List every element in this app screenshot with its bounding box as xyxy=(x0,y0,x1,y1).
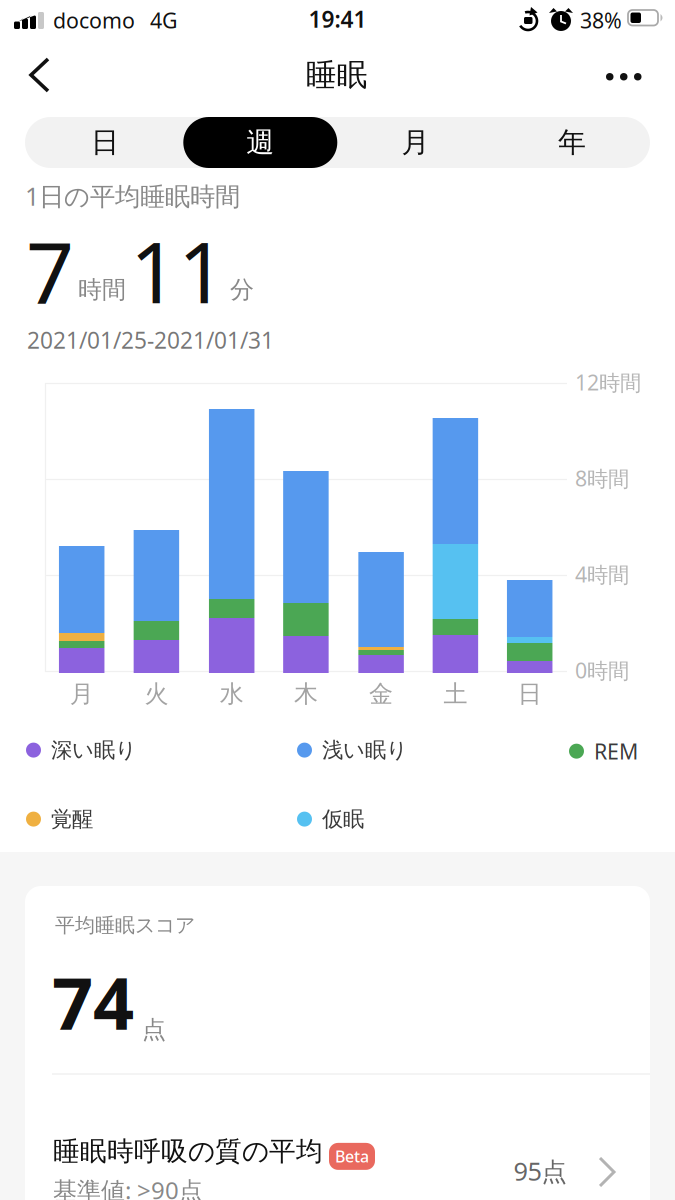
staticText: 1日の平均睡眠時間 xyxy=(25,179,240,213)
staticText: 土 xyxy=(443,679,467,709)
staticText: 月 xyxy=(402,125,430,160)
staticText: 金 xyxy=(369,679,393,709)
staticText: 0時間 xyxy=(575,656,629,684)
staticText: 19:41 xyxy=(308,4,366,34)
staticText: 時間 xyxy=(78,275,126,305)
staticText: REM xyxy=(594,737,638,765)
staticText: 火 xyxy=(144,679,168,709)
button[interactable]: 週 xyxy=(183,117,337,168)
staticText: 浅い眠り xyxy=(322,737,408,763)
staticText: 水 xyxy=(220,679,244,709)
staticText: 2021/01/25-2021/01/31 xyxy=(27,325,274,355)
staticText: 睡眠 xyxy=(306,56,368,94)
staticText: 睡眠時呼吸の質の平均 xyxy=(53,1135,323,1168)
button[interactable]: 年 xyxy=(495,117,649,168)
staticText: 7 xyxy=(26,215,74,326)
staticText: 4時間 xyxy=(575,560,629,588)
staticText: 8時間 xyxy=(575,464,629,492)
button[interactable]: Back xyxy=(18,53,62,97)
staticText: 38% xyxy=(580,6,622,34)
staticText: 11 xyxy=(130,215,226,326)
staticText: 95点 xyxy=(513,1154,566,1188)
staticText: 年 xyxy=(558,125,586,160)
staticText: 4G xyxy=(150,6,178,34)
staticText: 週 xyxy=(246,125,274,160)
staticText: 点 xyxy=(142,1015,166,1045)
staticText: 日 xyxy=(91,125,119,160)
staticText: 分 xyxy=(230,275,254,305)
staticText: Beta xyxy=(335,1146,369,1167)
button[interactable]: More xyxy=(596,54,652,98)
staticText: 74 xyxy=(52,954,134,1050)
button[interactable]: 月 xyxy=(339,117,493,168)
staticText: docomo xyxy=(53,6,135,34)
staticText: 仮眠 xyxy=(322,806,364,832)
button[interactable]: 日 xyxy=(28,117,182,168)
staticText: 木 xyxy=(294,679,318,709)
staticText: 覚醒 xyxy=(51,806,93,832)
staticText: 深い眠り xyxy=(51,737,137,763)
staticText: 12時間 xyxy=(575,368,641,396)
staticText: 平均睡眠スコア xyxy=(55,913,195,938)
staticText: 日 xyxy=(518,679,542,709)
staticText: 基準値: >90点 xyxy=(53,1174,203,1200)
staticText: 月 xyxy=(70,679,94,709)
button[interactable]: 睡眠時呼吸の質の平均 xyxy=(25,1130,650,1200)
